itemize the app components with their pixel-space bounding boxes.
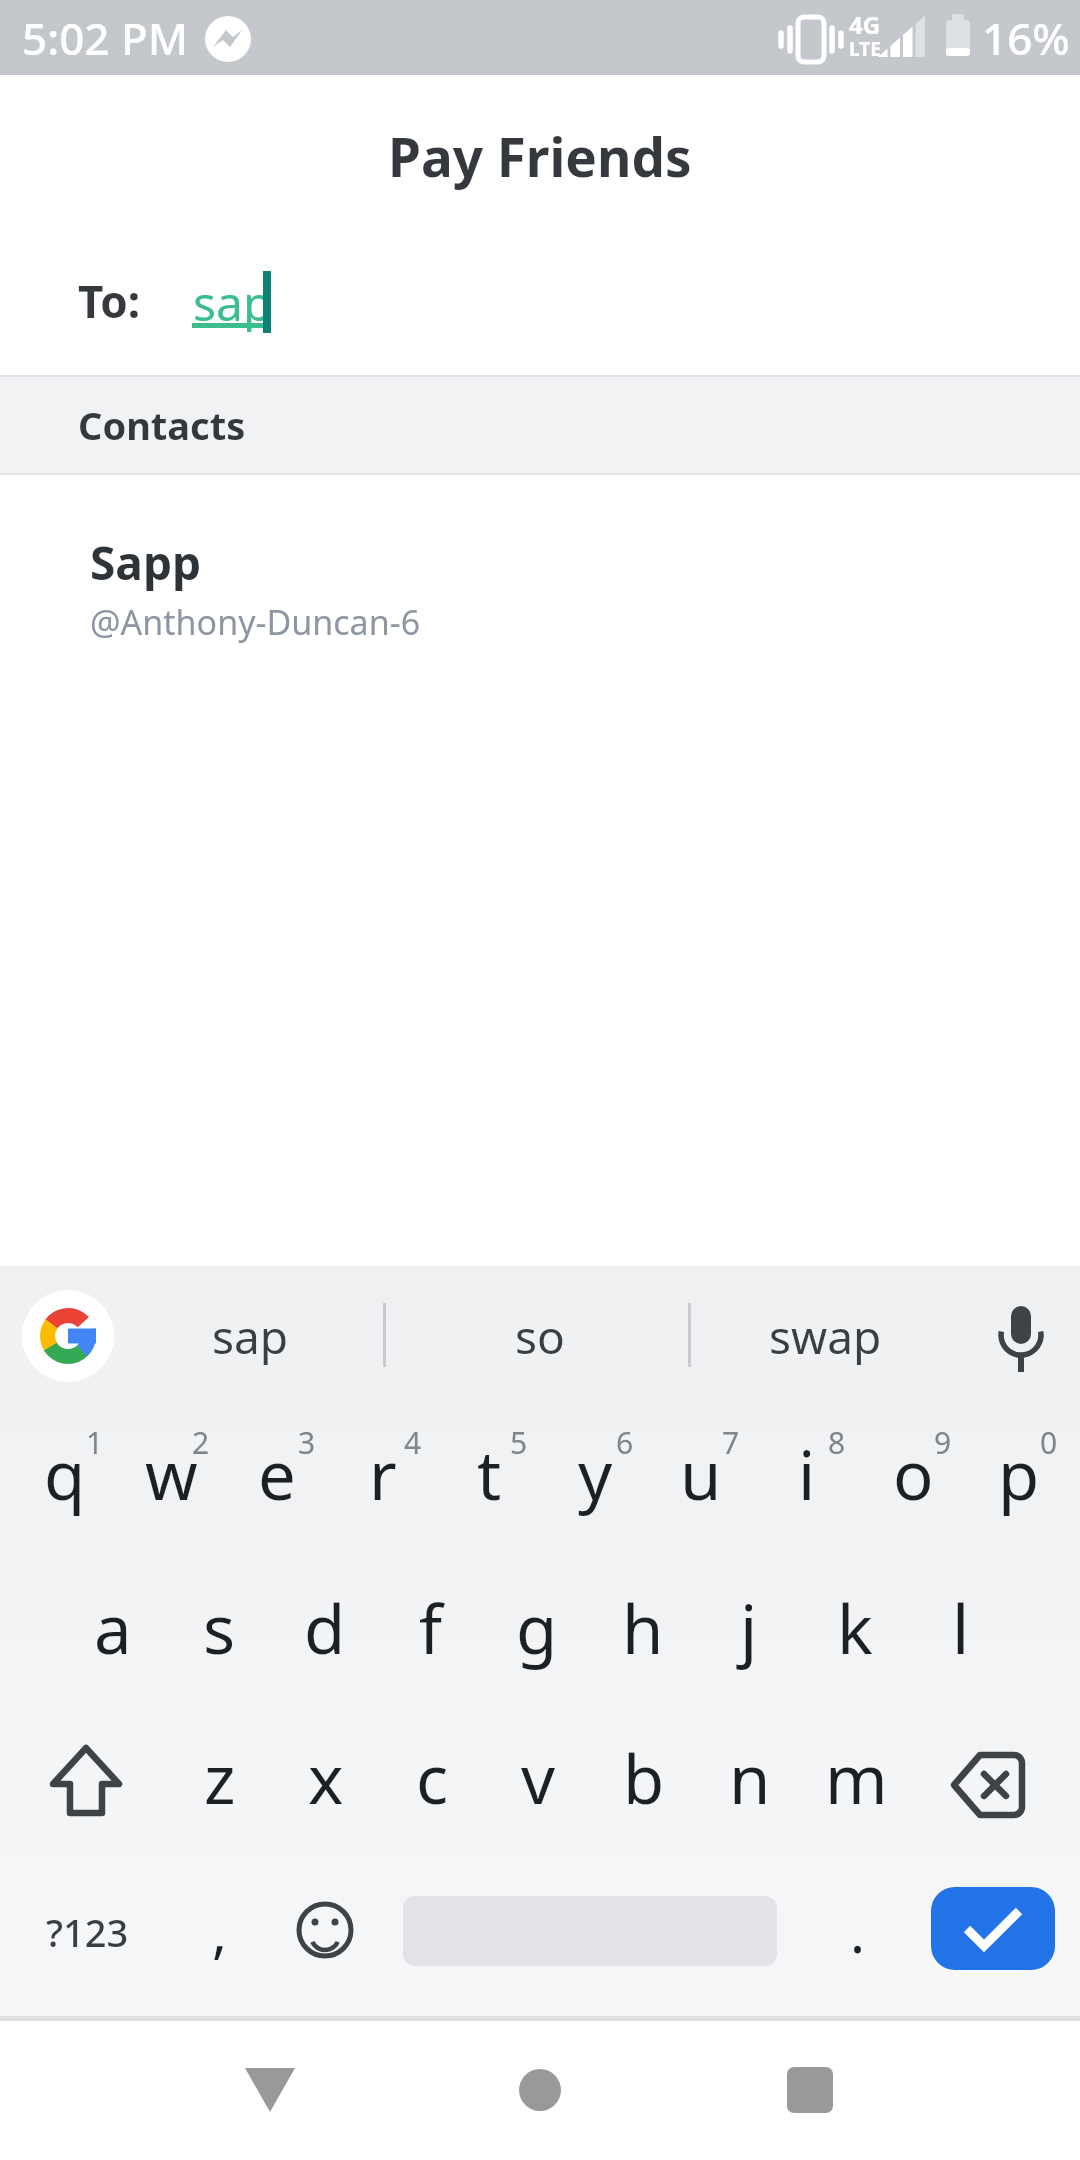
staticText: b <box>623 1732 665 1823</box>
staticText: Sapp <box>90 531 202 594</box>
staticText: y <box>578 1428 613 1519</box>
staticText: p <box>998 1428 1040 1519</box>
staticText: 4G <box>849 8 881 38</box>
button[interactable]: b <box>591 1702 697 1852</box>
staticText: z <box>204 1732 236 1823</box>
staticText: o <box>893 1428 934 1519</box>
staticText: t <box>477 1428 502 1519</box>
staticText: 0 <box>1040 1422 1058 1463</box>
button[interactable]: swap <box>735 1296 915 1376</box>
staticText: 7 <box>722 1422 740 1463</box>
button[interactable]: k <box>802 1552 908 1702</box>
button[interactable]: p <box>966 1398 1072 1548</box>
staticText: s <box>203 1582 236 1673</box>
staticText: 6 <box>616 1422 634 1463</box>
button[interactable]: Sapp <box>0 528 1080 678</box>
button[interactable]: , <box>180 1856 260 2006</box>
button[interactable] <box>931 1887 1055 1970</box>
staticText: w <box>145 1428 198 1519</box>
button[interactable]: e <box>224 1398 330 1548</box>
button[interactable]: s <box>166 1552 272 1702</box>
staticText: sap <box>193 270 273 335</box>
button[interactable]: t <box>436 1398 542 1548</box>
button[interactable]: l <box>908 1552 1014 1702</box>
button[interactable]: u <box>648 1398 754 1548</box>
button[interactable]: so <box>450 1296 630 1376</box>
staticText: . <box>850 1893 866 1969</box>
button[interactable]: x <box>273 1702 379 1852</box>
staticText: h <box>622 1582 664 1673</box>
button[interactable]: o <box>860 1398 966 1548</box>
staticText: k <box>837 1582 873 1673</box>
staticText: n <box>729 1732 771 1823</box>
button[interactable]: n <box>697 1702 803 1852</box>
staticText: Pay Friends <box>388 120 692 192</box>
staticText: , <box>212 1893 228 1969</box>
button[interactable]: sap <box>160 1296 340 1376</box>
button[interactable] <box>22 1290 114 1382</box>
button[interactable] <box>975 1296 1065 1376</box>
button[interactable]: ?123 <box>30 1857 145 2007</box>
staticText: 8 <box>828 1422 846 1463</box>
staticText: v <box>521 1732 556 1823</box>
staticText: m <box>825 1732 888 1823</box>
button[interactable]: i <box>754 1398 860 1548</box>
button[interactable] <box>755 2040 865 2140</box>
button[interactable]: w <box>118 1398 224 1548</box>
button[interactable]: sap <box>190 262 690 342</box>
button[interactable]: a <box>60 1552 166 1702</box>
staticText: 4 <box>404 1422 422 1463</box>
button[interactable]: y <box>542 1398 648 1548</box>
staticText: l <box>952 1582 970 1673</box>
staticText: ?123 <box>46 1906 129 1958</box>
staticText: Contacts <box>78 399 246 451</box>
staticText: 3 <box>298 1422 316 1463</box>
button[interactable]: q <box>12 1398 118 1548</box>
button[interactable]: f <box>378 1552 484 1702</box>
staticText: so <box>515 1305 565 1368</box>
staticText: i <box>798 1428 816 1519</box>
staticText: j <box>740 1582 758 1673</box>
staticText: g <box>516 1582 558 1673</box>
button[interactable] <box>485 2040 595 2140</box>
staticText: @Anthony-Duncan-6 <box>90 599 421 645</box>
staticText: sap <box>212 1305 289 1368</box>
staticText: 5:02 PM <box>22 8 189 68</box>
button[interactable]: d <box>272 1552 378 1702</box>
staticText: 1 <box>86 1422 104 1463</box>
staticText: e <box>258 1428 296 1519</box>
staticText: r <box>369 1428 397 1519</box>
button[interactable] <box>215 2040 325 2140</box>
staticText: c <box>416 1732 449 1823</box>
button[interactable]: v <box>485 1702 591 1852</box>
button[interactable] <box>285 1890 365 1970</box>
button[interactable]: z <box>167 1702 273 1852</box>
staticText: 9 <box>934 1422 952 1463</box>
button[interactable] <box>930 1710 1054 1850</box>
staticText: To: <box>78 271 141 331</box>
button[interactable] <box>26 1710 146 1850</box>
staticText: d <box>304 1582 346 1673</box>
button[interactable]: h <box>590 1552 696 1702</box>
staticText: 5 <box>510 1422 528 1463</box>
button[interactable]: c <box>379 1702 485 1852</box>
staticText: LTE <box>849 36 881 62</box>
staticText: 2 <box>192 1422 210 1463</box>
staticText: a <box>94 1582 132 1673</box>
staticText: 16% <box>982 8 1070 68</box>
button[interactable]: r <box>330 1398 436 1548</box>
button[interactable]: . <box>818 1856 898 2006</box>
staticText: q <box>44 1428 86 1519</box>
staticText: x <box>308 1732 344 1823</box>
staticText: u <box>680 1428 722 1519</box>
button[interactable]: g <box>484 1552 590 1702</box>
staticText: f <box>419 1582 443 1673</box>
button[interactable]: m <box>803 1702 909 1852</box>
staticText: swap <box>769 1305 882 1368</box>
button[interactable]: j <box>696 1552 802 1702</box>
